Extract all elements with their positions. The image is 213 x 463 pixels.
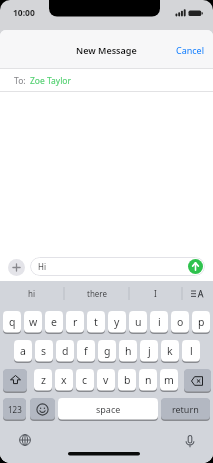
- staticText: t: [94, 315, 98, 329]
- button[interactable]: f: [77, 340, 95, 362]
- button[interactable]: I: [129, 281, 182, 306]
- staticText: I: [154, 288, 157, 299]
- button[interactable]: space: [58, 398, 158, 420]
- staticText: q: [9, 315, 16, 329]
- staticText: i: [158, 315, 161, 329]
- staticText: e: [51, 315, 57, 329]
- button[interactable]: h: [119, 340, 137, 362]
- staticText: h: [125, 344, 132, 358]
- button[interactable]: [3, 369, 27, 392]
- staticText: w: [29, 315, 38, 329]
- button[interactable]: i: [150, 311, 168, 333]
- button[interactable]: y: [108, 311, 126, 333]
- staticText: hi: [28, 288, 36, 299]
- staticText: return: [172, 403, 199, 415]
- button[interactable]: l: [182, 340, 200, 362]
- staticText: g: [104, 344, 111, 358]
- button[interactable]: x: [55, 369, 73, 391]
- button[interactable]: return: [161, 398, 210, 420]
- button[interactable]: q: [3, 311, 21, 333]
- button[interactable]: 123: [3, 398, 26, 420]
- staticText: z: [41, 373, 46, 387]
- staticText: x: [61, 373, 67, 387]
- button[interactable]: [182, 281, 213, 306]
- staticText: there: [87, 288, 107, 299]
- button[interactable]: r: [66, 311, 84, 333]
- button[interactable]: [8, 259, 25, 276]
- button[interactable]: [188, 259, 203, 274]
- button[interactable]: d: [56, 340, 74, 362]
- staticText: p: [198, 315, 205, 329]
- staticText: Zoe Taylor: [30, 75, 72, 87]
- button[interactable]: u: [129, 311, 147, 333]
- button[interactable]: t: [87, 311, 105, 333]
- button[interactable]: w: [24, 311, 42, 333]
- staticText: o: [177, 315, 184, 329]
- button[interactable]: z: [34, 369, 52, 391]
- button[interactable]: Cancel: [176, 30, 205, 69]
- staticText: r: [73, 315, 78, 329]
- staticText: l: [190, 344, 193, 358]
- button[interactable]: m: [160, 369, 178, 391]
- staticText: 123: [8, 404, 22, 415]
- staticText: j: [148, 344, 151, 358]
- button[interactable]: n: [139, 369, 157, 391]
- staticText: n: [145, 373, 152, 387]
- staticText: Hi: [38, 261, 46, 272]
- staticText: u: [135, 315, 142, 329]
- button[interactable]: [184, 369, 211, 392]
- button[interactable]: c: [76, 369, 94, 391]
- button[interactable]: a: [14, 340, 32, 362]
- button[interactable]: there: [64, 281, 129, 306]
- button[interactable]: g: [98, 340, 116, 362]
- staticText: v: [103, 373, 109, 387]
- button[interactable]: e: [45, 311, 63, 333]
- staticText: d: [62, 344, 69, 358]
- staticText: m: [164, 373, 174, 387]
- staticText: Cancel: [176, 44, 205, 56]
- staticText: f: [84, 344, 88, 358]
- staticText: space: [96, 403, 121, 415]
- button[interactable]: s: [35, 340, 53, 362]
- staticText: s: [41, 344, 47, 358]
- staticText: c: [82, 373, 88, 387]
- staticText: a: [20, 344, 26, 358]
- staticText: 10:00: [13, 7, 35, 19]
- button[interactable]: [30, 398, 55, 420]
- button[interactable]: hi: [0, 281, 64, 306]
- button[interactable]: To:: [0, 69, 213, 92]
- staticText: y: [114, 315, 120, 329]
- button[interactable]: p: [192, 311, 210, 333]
- button[interactable]: b: [118, 369, 136, 391]
- staticText: New Message: [76, 44, 137, 56]
- staticText: b: [124, 373, 131, 387]
- button[interactable]: k: [161, 340, 179, 362]
- button[interactable]: o: [171, 311, 189, 333]
- staticText: To:: [14, 75, 26, 87]
- button[interactable]: j: [140, 340, 158, 362]
- staticText: k: [167, 344, 173, 358]
- button[interactable]: v: [97, 369, 115, 391]
